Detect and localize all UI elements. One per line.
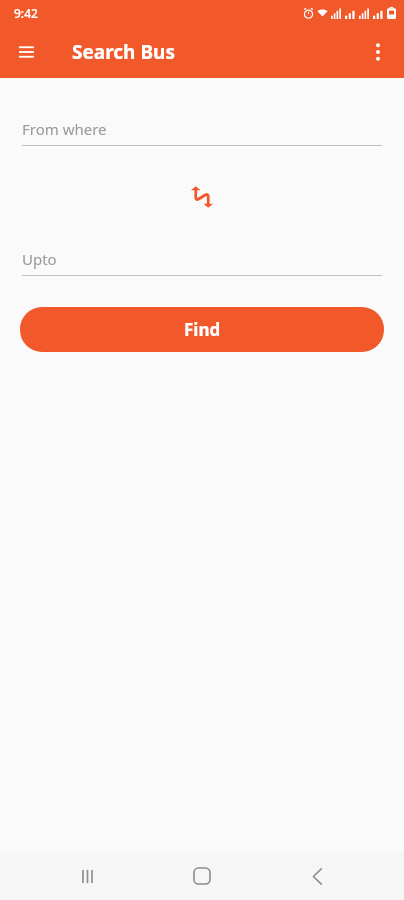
button[interactable]: Home <box>174 852 230 900</box>
button[interactable]: Recent apps <box>59 852 115 900</box>
button[interactable]: Open navigation drawer <box>8 34 44 70</box>
button[interactable]: Back <box>289 852 345 900</box>
staticText: From where <box>22 119 107 139</box>
staticText: 9:42 <box>14 5 38 21</box>
staticText: Upto <box>22 249 57 269</box>
button[interactable]: Upto <box>22 249 382 276</box>
button[interactable]: Find <box>20 307 384 352</box>
staticText: Find <box>184 318 221 341</box>
button[interactable]: More options <box>358 32 398 72</box>
button[interactable]: From where <box>22 119 382 146</box>
button[interactable]: Swap from and to <box>182 177 222 217</box>
staticText: Search Bus <box>72 39 175 65</box>
